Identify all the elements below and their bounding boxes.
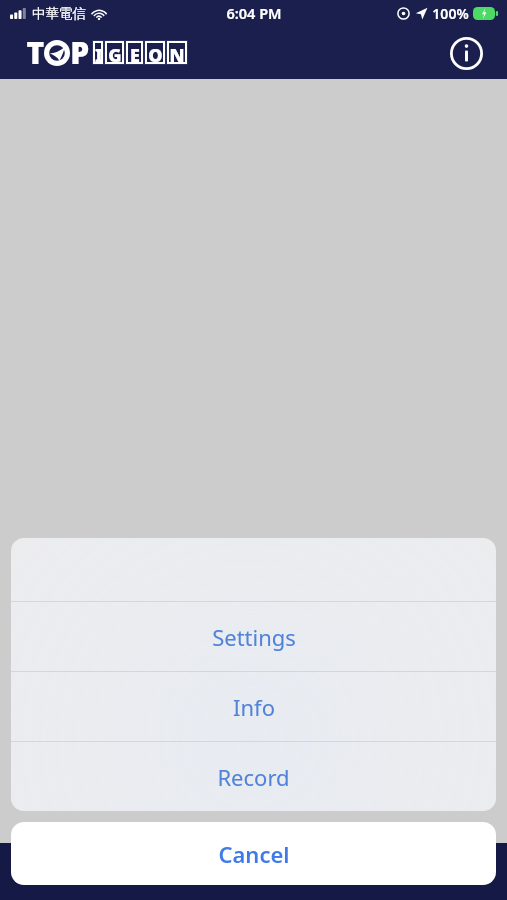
button[interactable]: Info bbox=[11, 672, 496, 741]
staticText: Cancel bbox=[218, 839, 290, 869]
staticText: Record bbox=[217, 762, 290, 792]
button[interactable]: Cancel bbox=[11, 822, 496, 885]
staticText: N bbox=[169, 43, 185, 62]
staticText: G bbox=[108, 43, 122, 62]
staticText: I bbox=[95, 43, 101, 62]
staticText: Settings bbox=[212, 622, 296, 652]
button[interactable]: Record bbox=[11, 742, 496, 811]
staticText: E bbox=[130, 43, 140, 62]
staticText: O bbox=[148, 43, 163, 62]
staticText: T bbox=[26, 32, 44, 73]
staticText: P bbox=[70, 32, 89, 73]
staticText: 100% bbox=[432, 4, 469, 23]
button[interactable]: Info bbox=[445, 32, 487, 74]
staticText: Info bbox=[233, 692, 275, 722]
staticText: 中華電信 bbox=[32, 5, 86, 22]
staticText: 6:04 PM bbox=[226, 3, 282, 23]
button[interactable]: Settings bbox=[11, 602, 496, 671]
